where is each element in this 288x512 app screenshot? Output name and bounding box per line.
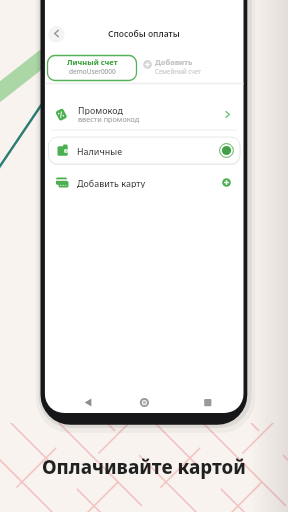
staticText: Добавить карту [77,178,146,188]
button[interactable] [46,170,242,196]
staticText: Способы оплаты [108,28,180,40]
staticText: Наличные [77,146,123,156]
button[interactable] [48,25,65,42]
button[interactable] [46,100,242,130]
button[interactable] [141,55,213,78]
staticText: ввести промокод [78,114,140,123]
button[interactable] [80,394,96,410]
staticText: Личный счет [67,57,118,67]
button[interactable] [49,137,241,164]
staticText: Оплачивайте картой [42,454,246,479]
button[interactable] [136,394,152,410]
button[interactable] [200,394,216,410]
staticText: Добавить [155,57,193,67]
button[interactable] [48,56,137,81]
staticText: Промокод [78,105,123,115]
staticText: Семейный счет [155,67,202,75]
staticText: demoUser0000 [69,67,116,76]
